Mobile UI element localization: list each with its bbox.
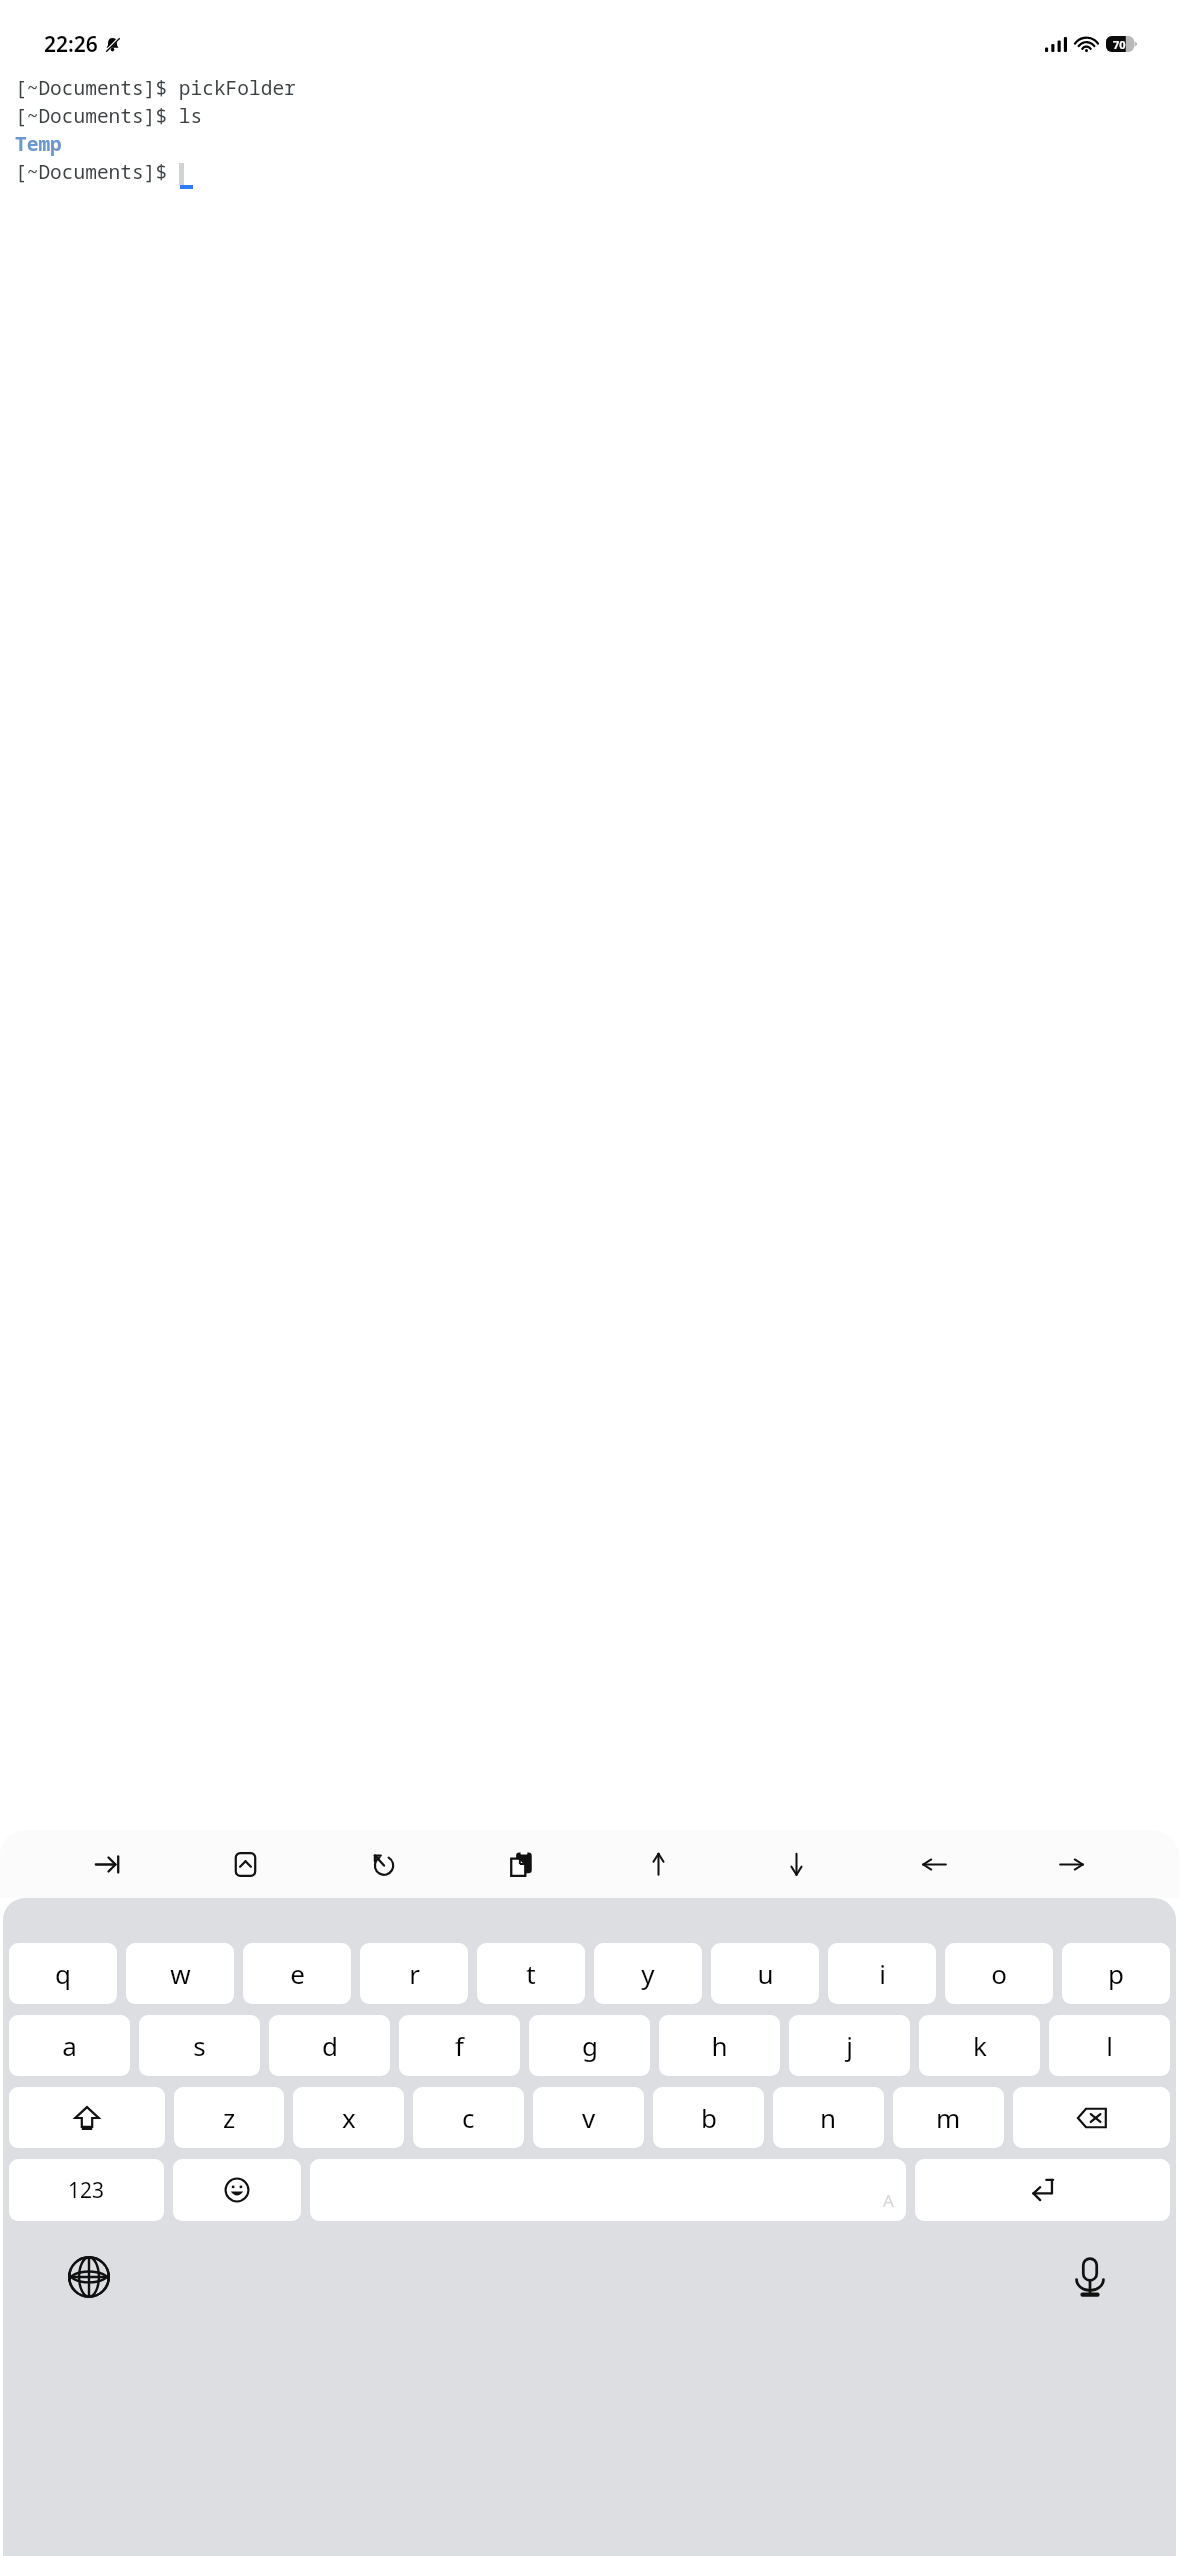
staticText: 70 — [1113, 37, 1126, 52]
staticText: o — [991, 1956, 1007, 1991]
staticText: y — [641, 1956, 655, 1991]
staticText: f — [455, 2028, 464, 2063]
button[interactable]: u — [711, 1943, 819, 2004]
staticText: l — [1106, 2028, 1113, 2063]
button[interactable]: j — [789, 2015, 910, 2076]
button[interactable]: y — [594, 1943, 702, 2004]
button[interactable]: a — [9, 2015, 130, 2076]
staticText: p — [1108, 1956, 1124, 1991]
button[interactable]: z — [174, 2087, 284, 2148]
staticText: d — [322, 2028, 338, 2063]
staticText: u — [757, 1956, 774, 1991]
button[interactable]: q — [9, 1943, 117, 2004]
button[interactable]: Arrow left — [904, 1835, 964, 1893]
staticText: k — [973, 2028, 987, 2063]
button[interactable]: h — [659, 2015, 780, 2076]
button[interactable]: Return — [915, 2159, 1170, 2221]
staticText: w — [170, 1956, 191, 1991]
staticText: 123 — [68, 2176, 105, 2205]
staticText: t — [526, 1956, 536, 1991]
button[interactable]: c — [413, 2087, 524, 2148]
button[interactable]: Arrow up — [628, 1835, 688, 1893]
staticText: A — [883, 2189, 894, 2212]
button[interactable]: k — [919, 2015, 1040, 2076]
button[interactable]: 123 — [9, 2159, 164, 2221]
button[interactable]: l — [1049, 2015, 1170, 2076]
button[interactable]: Undo — [353, 1835, 413, 1893]
button[interactable]: Arrow down — [766, 1835, 826, 1893]
staticText: n — [820, 2100, 837, 2135]
staticText: g — [582, 2028, 598, 2063]
button[interactable]: b — [653, 2087, 764, 2148]
staticText: b — [701, 2100, 717, 2135]
staticText: r — [409, 1956, 420, 1991]
staticText: h — [711, 2028, 728, 2063]
staticText: q — [55, 1956, 71, 1991]
button[interactable]: m — [893, 2087, 1004, 2148]
button[interactable]: Tab — [78, 1835, 138, 1893]
button[interactable]: f — [399, 2015, 520, 2076]
staticText: [~Documents]$ ls — [15, 102, 203, 129]
button[interactable]: e — [243, 1943, 351, 2004]
staticText: m — [936, 2100, 961, 2135]
staticText: Temp — [15, 130, 62, 157]
staticText: a — [62, 2028, 77, 2063]
staticText: e — [290, 1956, 305, 1991]
button[interactable]: v — [533, 2087, 644, 2148]
button[interactable]: s — [139, 2015, 260, 2076]
staticText: v — [582, 2100, 596, 2135]
button[interactable]: g — [529, 2015, 650, 2076]
button[interactable]: n — [773, 2087, 884, 2148]
button[interactable]: o — [945, 1943, 1053, 2004]
button[interactable]: Change keyboard language — [61, 2249, 117, 2305]
staticText: s — [193, 2028, 206, 2063]
staticText: z — [223, 2100, 236, 2135]
button[interactable]: Backspace — [1013, 2087, 1170, 2148]
staticText: [~Documents]$ pickFolder — [15, 74, 296, 101]
button[interactable]: i — [828, 1943, 936, 2004]
button[interactable]: Control — [215, 1835, 275, 1893]
button[interactable]: Shift — [9, 2087, 165, 2148]
button[interactable]: Voice input — [1062, 2249, 1118, 2305]
button[interactable]: w — [126, 1943, 234, 2004]
button[interactable]: Emoji — [173, 2159, 301, 2221]
staticText: c — [462, 2100, 475, 2135]
button[interactable]: d — [269, 2015, 390, 2076]
staticText: i — [879, 1956, 886, 1991]
staticText: [~Documents]$ — [15, 158, 179, 185]
button[interactable]: Paste — [491, 1835, 551, 1893]
staticText: j — [846, 2028, 853, 2063]
button[interactable]: Arrow right — [1041, 1835, 1101, 1893]
button[interactable]: r — [360, 1943, 468, 2004]
button[interactable]: t — [477, 1943, 585, 2004]
button[interactable]: p — [1062, 1943, 1170, 2004]
button[interactable]: x — [293, 2087, 404, 2148]
staticText: 22:26 — [44, 30, 98, 59]
staticText: x — [342, 2100, 356, 2135]
